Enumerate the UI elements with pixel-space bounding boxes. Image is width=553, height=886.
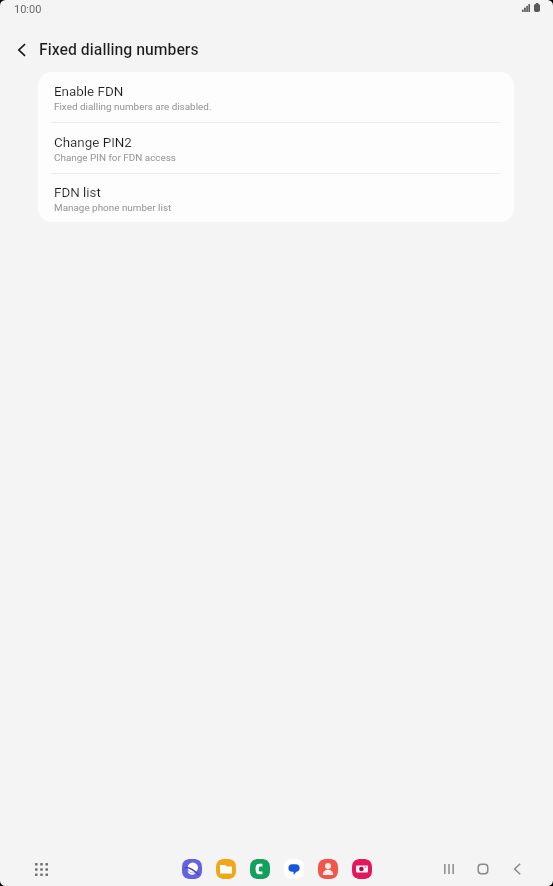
staticText: Enable FDN <box>54 84 124 100</box>
button[interactable]: Camera <box>352 859 372 879</box>
staticText: Fixed dialling numbers are disabled. <box>54 101 212 113</box>
button[interactable]: Phone <box>250 859 270 879</box>
button[interactable]: Back <box>505 857 529 881</box>
button[interactable]: Contacts <box>318 859 338 879</box>
button[interactable]: Internet <box>182 859 202 879</box>
staticText: 10:00 <box>14 3 42 16</box>
button[interactable]: Navigate up <box>4 27 39 73</box>
staticText: Manage phone number list <box>54 202 172 214</box>
staticText: Change PIN for FDN access <box>54 152 176 164</box>
button[interactable]: My Files <box>216 859 236 879</box>
button[interactable]: Enable FDN <box>38 72 514 122</box>
button[interactable]: Messages <box>284 859 304 879</box>
button[interactable]: Recent apps <box>437 857 461 881</box>
button[interactable]: FDN list <box>38 174 514 222</box>
button[interactable]: Home <box>471 857 495 881</box>
button[interactable]: Change PIN2 <box>38 123 514 173</box>
staticText: Fixed dialling numbers <box>39 40 199 59</box>
staticText: Change PIN2 <box>54 135 132 151</box>
button[interactable]: Apps <box>26 849 57 886</box>
staticText: FDN list <box>54 185 101 201</box>
